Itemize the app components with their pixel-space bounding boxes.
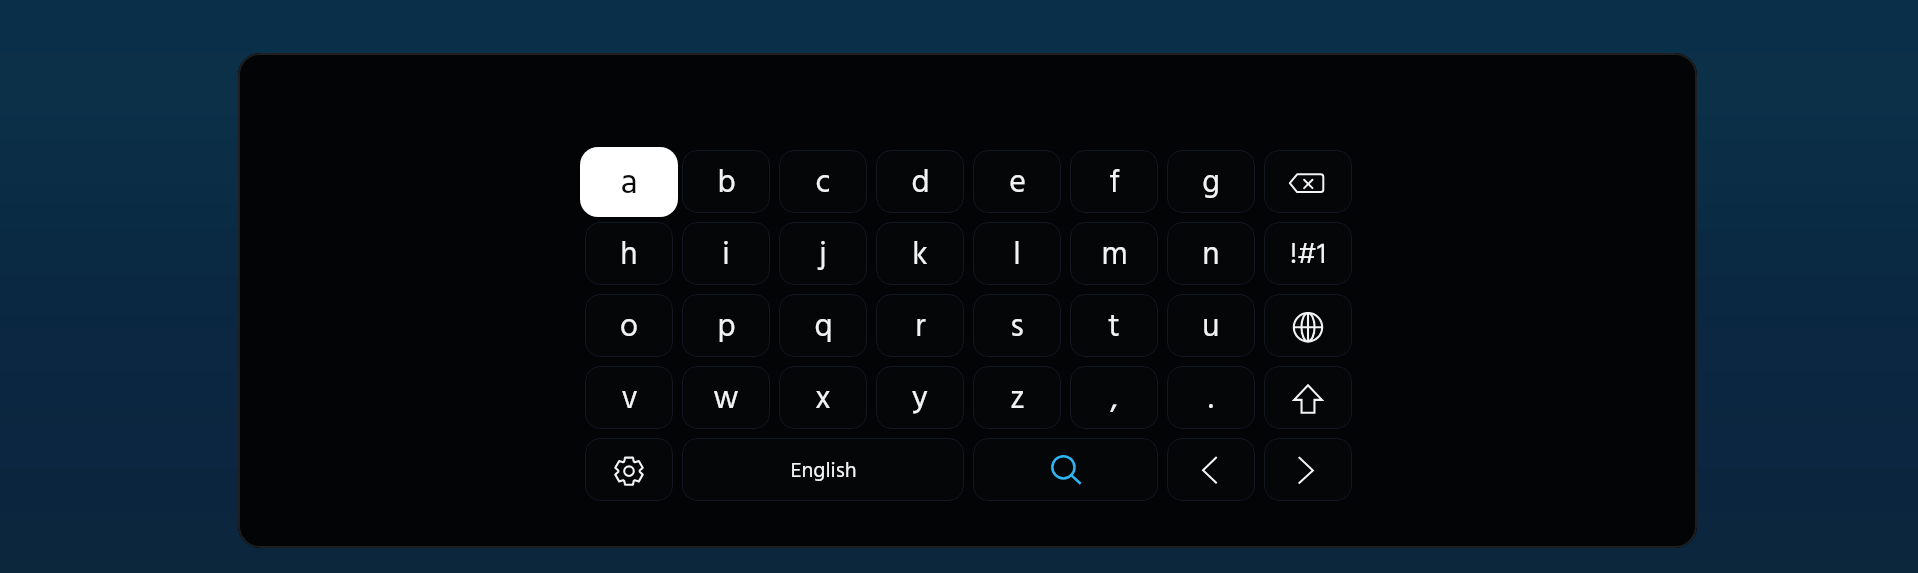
staticText: o bbox=[620, 302, 638, 353]
button[interactable]: Settings bbox=[585, 438, 673, 501]
button[interactable]: w bbox=[682, 366, 770, 429]
other: Change language bbox=[1286, 304, 1330, 348]
staticText: , bbox=[1110, 374, 1118, 425]
button[interactable]: m bbox=[1070, 222, 1158, 285]
staticText: !#1 bbox=[1290, 233, 1326, 278]
button[interactable]: s bbox=[973, 294, 1061, 357]
button[interactable]: u bbox=[1167, 294, 1255, 357]
staticText: English bbox=[790, 454, 857, 489]
button[interactable]: g bbox=[1167, 150, 1255, 213]
button[interactable]: v bbox=[585, 366, 673, 429]
button[interactable]: . bbox=[1167, 366, 1255, 429]
button[interactable]: z bbox=[973, 366, 1061, 429]
button[interactable]: English bbox=[682, 438, 964, 501]
button[interactable]: Previous bbox=[1167, 438, 1255, 501]
staticText: a bbox=[620, 156, 638, 212]
staticText: t bbox=[1108, 302, 1120, 353]
button[interactable]: r bbox=[876, 294, 964, 357]
button[interactable]: Search bbox=[973, 438, 1158, 501]
other: Shift bbox=[1286, 376, 1330, 420]
staticText: z bbox=[1010, 374, 1025, 425]
other: Next bbox=[1286, 448, 1330, 492]
button[interactable]: Shift bbox=[1264, 366, 1352, 429]
button[interactable]: b bbox=[682, 150, 770, 213]
button[interactable]: p bbox=[682, 294, 770, 357]
button[interactable]: j bbox=[779, 222, 867, 285]
button[interactable]: t bbox=[1070, 294, 1158, 357]
staticText: h bbox=[620, 230, 638, 281]
staticText: w bbox=[713, 374, 739, 425]
button[interactable]: k bbox=[876, 222, 964, 285]
staticText: e bbox=[1009, 158, 1026, 209]
button[interactable]: l bbox=[973, 222, 1061, 285]
staticText: d bbox=[911, 158, 930, 209]
staticText: x bbox=[815, 374, 831, 425]
staticText: k bbox=[912, 230, 928, 281]
staticText: i bbox=[722, 230, 730, 281]
staticText: j bbox=[819, 230, 827, 281]
button[interactable]: Next bbox=[1264, 438, 1352, 501]
button[interactable]: e bbox=[973, 150, 1061, 213]
button[interactable]: h bbox=[585, 222, 673, 285]
other: Backspace bbox=[1286, 160, 1330, 204]
other: Settings bbox=[607, 448, 651, 492]
staticText: r bbox=[915, 302, 926, 353]
button[interactable]: d bbox=[876, 150, 964, 213]
staticText: . bbox=[1208, 374, 1214, 425]
staticText: s bbox=[1010, 302, 1024, 353]
button[interactable]: Backspace bbox=[1264, 150, 1352, 213]
staticText: b bbox=[717, 158, 736, 209]
staticText: m bbox=[1101, 230, 1128, 281]
staticText: n bbox=[1202, 230, 1220, 281]
staticText: l bbox=[1013, 230, 1021, 281]
staticText: f bbox=[1109, 158, 1120, 209]
button[interactable]: i bbox=[682, 222, 770, 285]
button[interactable]: a bbox=[580, 147, 678, 217]
button[interactable]: f bbox=[1070, 150, 1158, 213]
button[interactable]: , bbox=[1070, 366, 1158, 429]
button[interactable]: x bbox=[779, 366, 867, 429]
staticText: q bbox=[814, 302, 833, 353]
button[interactable]: o bbox=[585, 294, 673, 357]
staticText: g bbox=[1202, 158, 1220, 209]
staticText: y bbox=[912, 374, 928, 425]
staticText: p bbox=[717, 302, 736, 353]
staticText: u bbox=[1202, 302, 1220, 353]
button[interactable]: Change language bbox=[1264, 294, 1352, 357]
other: Search bbox=[1044, 448, 1088, 492]
button[interactable]: n bbox=[1167, 222, 1255, 285]
staticText: c bbox=[815, 158, 831, 209]
button[interactable]: !#1 bbox=[1264, 222, 1352, 285]
button[interactable]: c bbox=[779, 150, 867, 213]
other: Previous bbox=[1189, 448, 1233, 492]
button[interactable]: q bbox=[779, 294, 867, 357]
staticText: v bbox=[621, 374, 638, 425]
button[interactable]: y bbox=[876, 366, 964, 429]
